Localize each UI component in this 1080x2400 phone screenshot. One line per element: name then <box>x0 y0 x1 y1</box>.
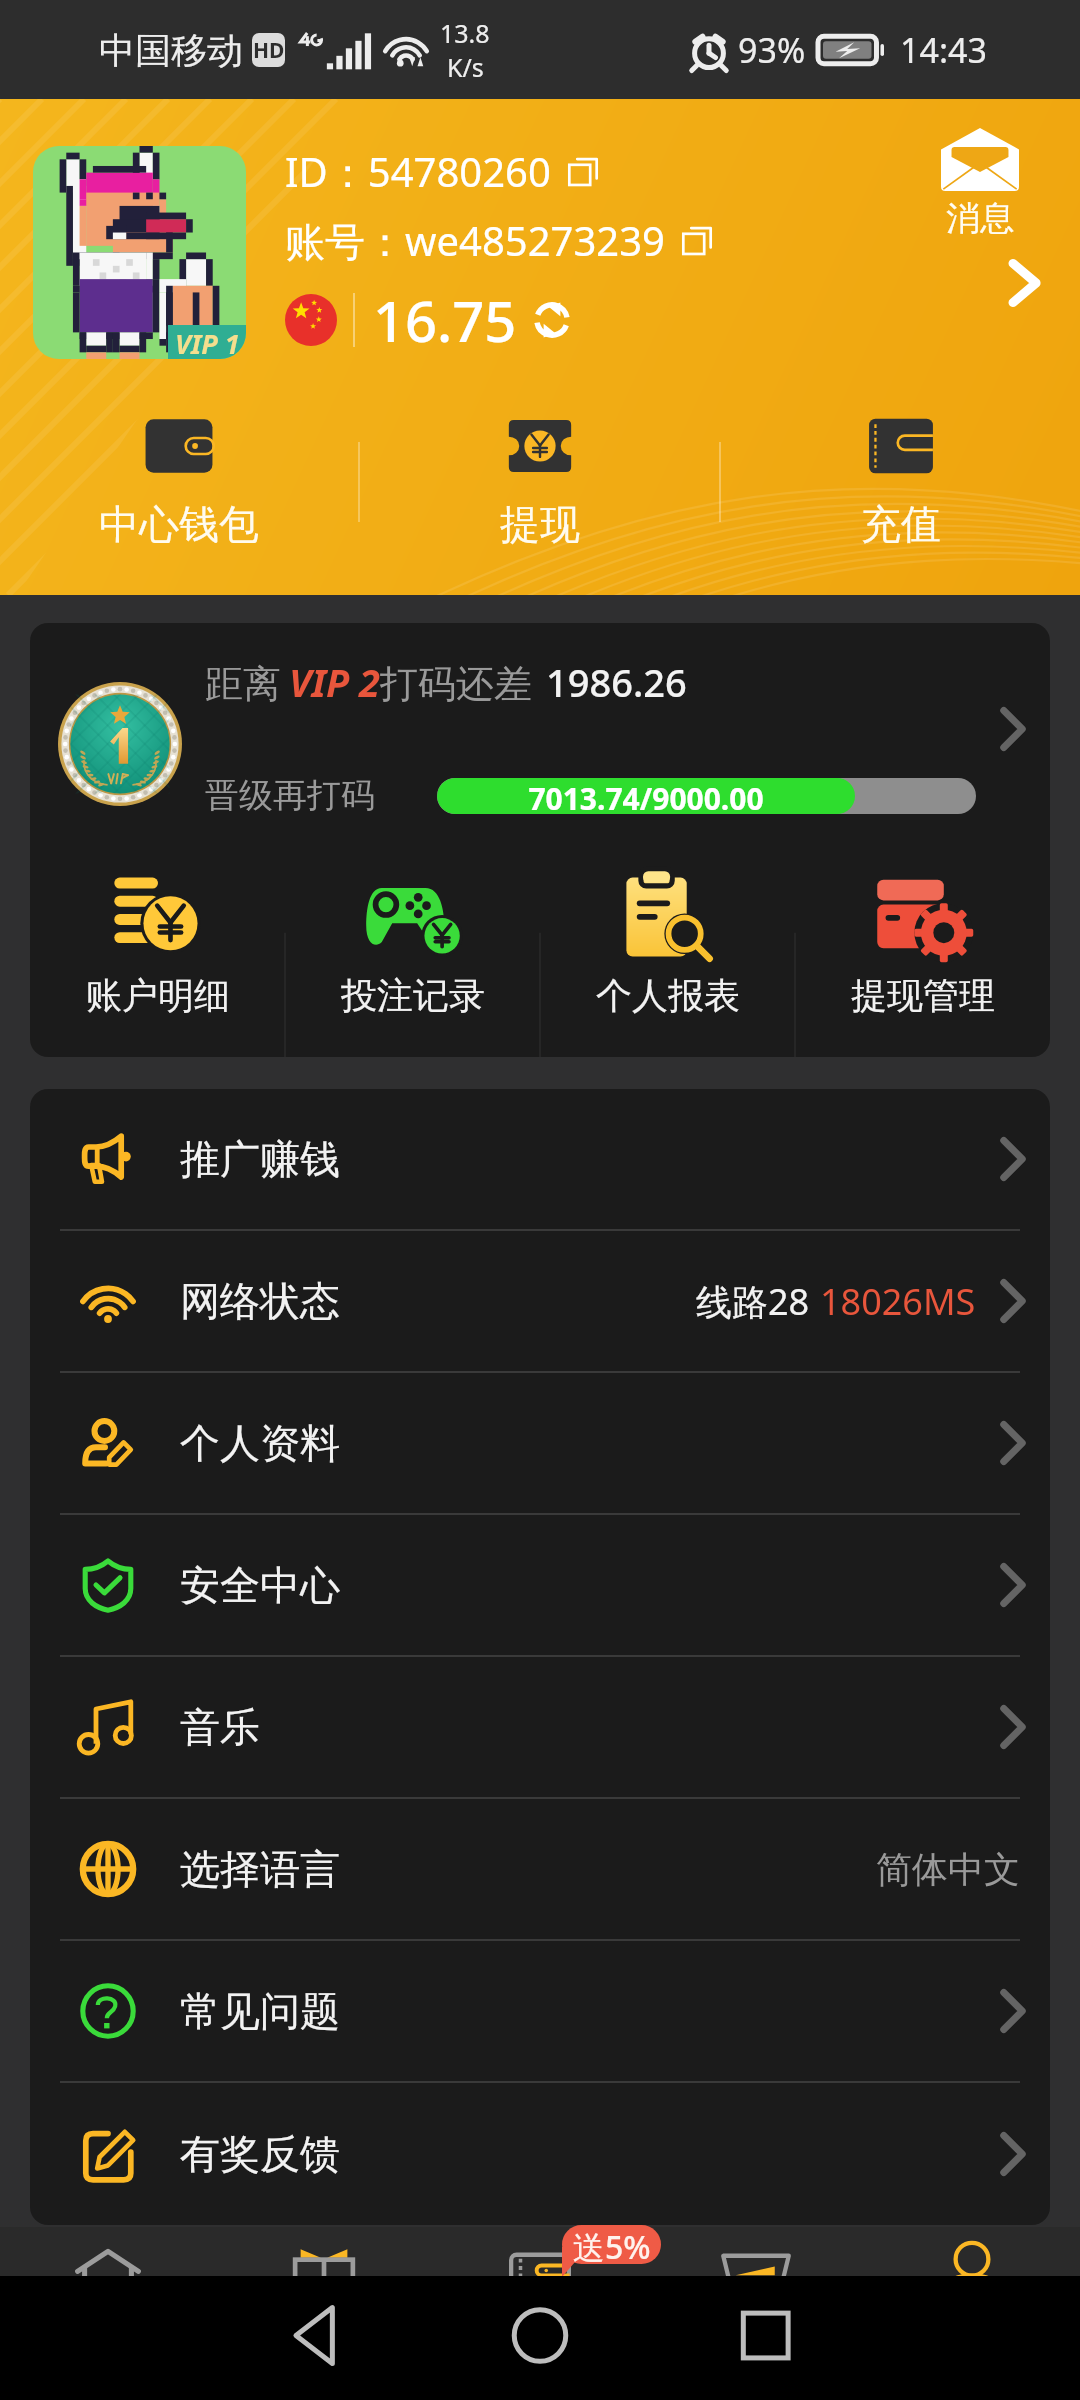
staticText: 晋级再打码 <box>205 774 375 817</box>
button[interactable]: 提现 <box>360 409 719 555</box>
button[interactable]: Profile detail <box>992 248 1062 318</box>
staticText: 安全中心 <box>180 1560 340 1610</box>
button[interactable]: 有奖反馈 <box>30 2083 1050 2225</box>
staticText: 有奖反馈 <box>180 2129 340 2179</box>
staticText: 常见问题 <box>180 1986 340 2036</box>
staticText: 个人资料 <box>180 1418 340 1468</box>
button[interactable]: 投注记录 <box>285 835 540 1057</box>
staticText: 选择语言 <box>180 1844 340 1894</box>
button[interactable]: 选择语言 <box>30 1799 1050 1939</box>
button[interactable]: 网络状态 <box>30 1231 1050 1371</box>
button[interactable]: 音乐 <box>30 1657 1050 1797</box>
button[interactable]: 中心钱包 <box>0 409 358 555</box>
button[interactable]: 距离 <box>30 623 1050 835</box>
button[interactable]: Deposit <box>648 2227 864 2276</box>
staticText: 7013.74/9000.00 <box>437 778 855 814</box>
staticText: 个人报表 <box>596 973 740 1018</box>
button[interactable]: 个人报表 <box>540 835 795 1057</box>
button[interactable]: 安全中心 <box>30 1515 1050 1655</box>
staticText: K/s <box>447 50 484 84</box>
staticText: HD <box>253 36 285 65</box>
button[interactable]: Profile <box>864 2227 1080 2276</box>
staticText: 13.8 <box>440 16 490 50</box>
staticText: 93% <box>738 27 806 73</box>
staticText: 18026MS <box>820 1277 976 1326</box>
staticText: 提现 <box>500 499 580 549</box>
staticText: 网络状态 <box>180 1276 340 1326</box>
button[interactable]: Refresh balance <box>529 297 575 343</box>
staticText: 账号：we485273239 <box>285 213 665 268</box>
other: Copy account <box>679 223 715 259</box>
staticText: 16.75 <box>373 282 517 358</box>
staticText: 送5% <box>573 2225 651 2264</box>
button[interactable]: 账号：we485273239 <box>285 213 715 268</box>
staticText: 简体中文 <box>876 1847 1020 1892</box>
button[interactable]: ID：54780260 <box>285 144 601 199</box>
button[interactable]: Home <box>0 2227 216 2276</box>
staticText: 打码还差 <box>380 660 532 708</box>
button[interactable]: Avatar <box>33 146 246 359</box>
button[interactable]: 常见问题 <box>30 1941 1050 2081</box>
button[interactable]: 消息 <box>941 128 1019 240</box>
button[interactable]: 账户明细 <box>30 835 285 1057</box>
staticText: 推广赚钱 <box>180 1134 340 1184</box>
staticText: 投注记录 <box>341 973 485 1018</box>
button[interactable]: 个人资料 <box>30 1373 1050 1513</box>
staticText: 消息 <box>946 197 1014 240</box>
staticText: 线路28 <box>696 1277 810 1326</box>
staticText: 音乐 <box>180 1702 260 1752</box>
button[interactable]: 充值 <box>721 409 1080 555</box>
staticText: 充值 <box>861 499 941 549</box>
button[interactable]: 推广赚钱 <box>30 1089 1050 1229</box>
staticText: 提现管理 <box>851 973 995 1018</box>
staticText: 中心钱包 <box>99 499 259 549</box>
button[interactable]: Wallet <box>432 2227 648 2276</box>
staticText: 14:43 <box>900 27 987 73</box>
staticText: 1986.26 <box>546 656 687 708</box>
staticText: VIP 2 <box>289 656 380 708</box>
staticText: 距离 <box>205 660 281 708</box>
other: Copy ID <box>565 154 601 190</box>
button[interactable]: 提现管理 <box>795 835 1050 1057</box>
staticText: VIP 1 <box>175 325 240 359</box>
button[interactable]: Promotions <box>216 2227 432 2276</box>
button[interactable]: 送5% <box>562 2225 661 2264</box>
staticText: 账户明细 <box>86 973 230 1018</box>
staticText: ID：54780260 <box>285 144 551 199</box>
staticText: 中国移动 <box>99 28 243 73</box>
